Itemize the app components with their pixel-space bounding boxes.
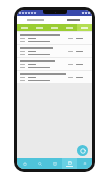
button[interactable] [17, 45, 92, 57]
button[interactable] [77, 24, 92, 31]
button[interactable]: Profile [77, 158, 92, 169]
button[interactable] [17, 58, 92, 70]
button[interactable]: Search [32, 158, 47, 169]
button[interactable] [17, 71, 92, 83]
button[interactable] [17, 16, 54, 24]
button[interactable] [54, 16, 92, 24]
button[interactable]: Add record [77, 145, 88, 156]
button[interactable] [17, 24, 32, 31]
button[interactable]: Calendar [62, 158, 77, 169]
button[interactable] [62, 24, 77, 31]
button[interactable] [32, 24, 47, 31]
button[interactable]: Home [17, 158, 32, 169]
button[interactable]: Documents [47, 158, 62, 169]
button[interactable] [17, 32, 92, 44]
button[interactable] [47, 24, 62, 31]
